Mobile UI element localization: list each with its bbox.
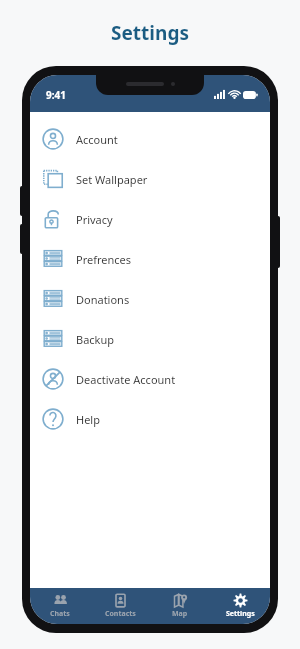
staticText: Deactivate Account (76, 372, 176, 387)
staticText: Backup (76, 332, 115, 347)
staticText: Account (76, 132, 118, 147)
staticText: 9:41 (46, 88, 66, 102)
staticText: Prefrences (76, 252, 132, 267)
staticText: Set Wallpaper (76, 172, 148, 187)
staticText: Privacy (76, 212, 113, 227)
button[interactable]: Prefrences (30, 239, 270, 279)
button[interactable]: Chats (30, 588, 90, 624)
staticText: Settings (111, 20, 189, 46)
button[interactable]: Donations (30, 279, 270, 319)
staticText: Donations (76, 292, 130, 307)
button[interactable]: Set Wallpaper (30, 159, 270, 199)
button[interactable]: Contacts (90, 588, 150, 624)
staticText: Settings (226, 609, 255, 619)
button[interactable]: Help (30, 399, 270, 439)
button[interactable]: Account (30, 119, 270, 159)
staticText: Contacts (105, 609, 136, 619)
staticText: Help (76, 412, 100, 427)
button[interactable]: Backup (30, 319, 270, 359)
button[interactable]: Settings (210, 588, 270, 624)
button[interactable]: Privacy (30, 199, 270, 239)
button[interactable]: Deactivate Account (30, 359, 270, 399)
staticText: Chats (50, 609, 70, 619)
button[interactable]: Map (150, 588, 210, 624)
staticText: Map (172, 609, 188, 619)
